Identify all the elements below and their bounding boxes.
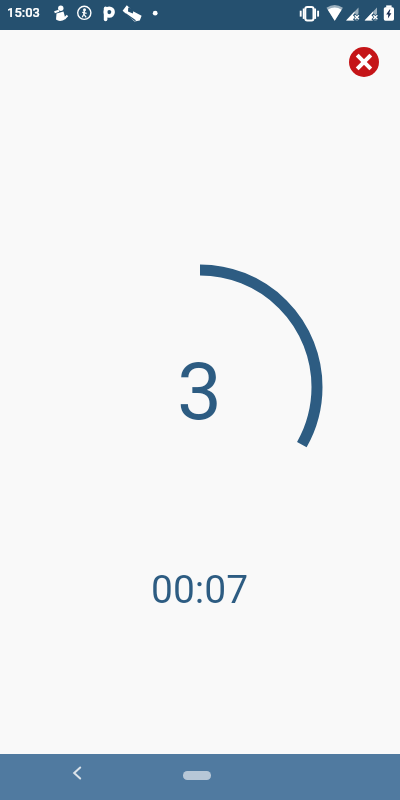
button[interactable] [349, 47, 379, 77]
staticText: 15:03 [7, 5, 41, 20]
button[interactable] [183, 771, 211, 780]
staticText: 00:07 [151, 567, 249, 613]
staticText: 3 [177, 345, 222, 439]
button[interactable] [61, 759, 91, 789]
